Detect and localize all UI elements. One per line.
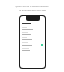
staticText: in minutes with our app [19,8,46,11]
staticText: Quick set up a speed network [15,4,49,7]
